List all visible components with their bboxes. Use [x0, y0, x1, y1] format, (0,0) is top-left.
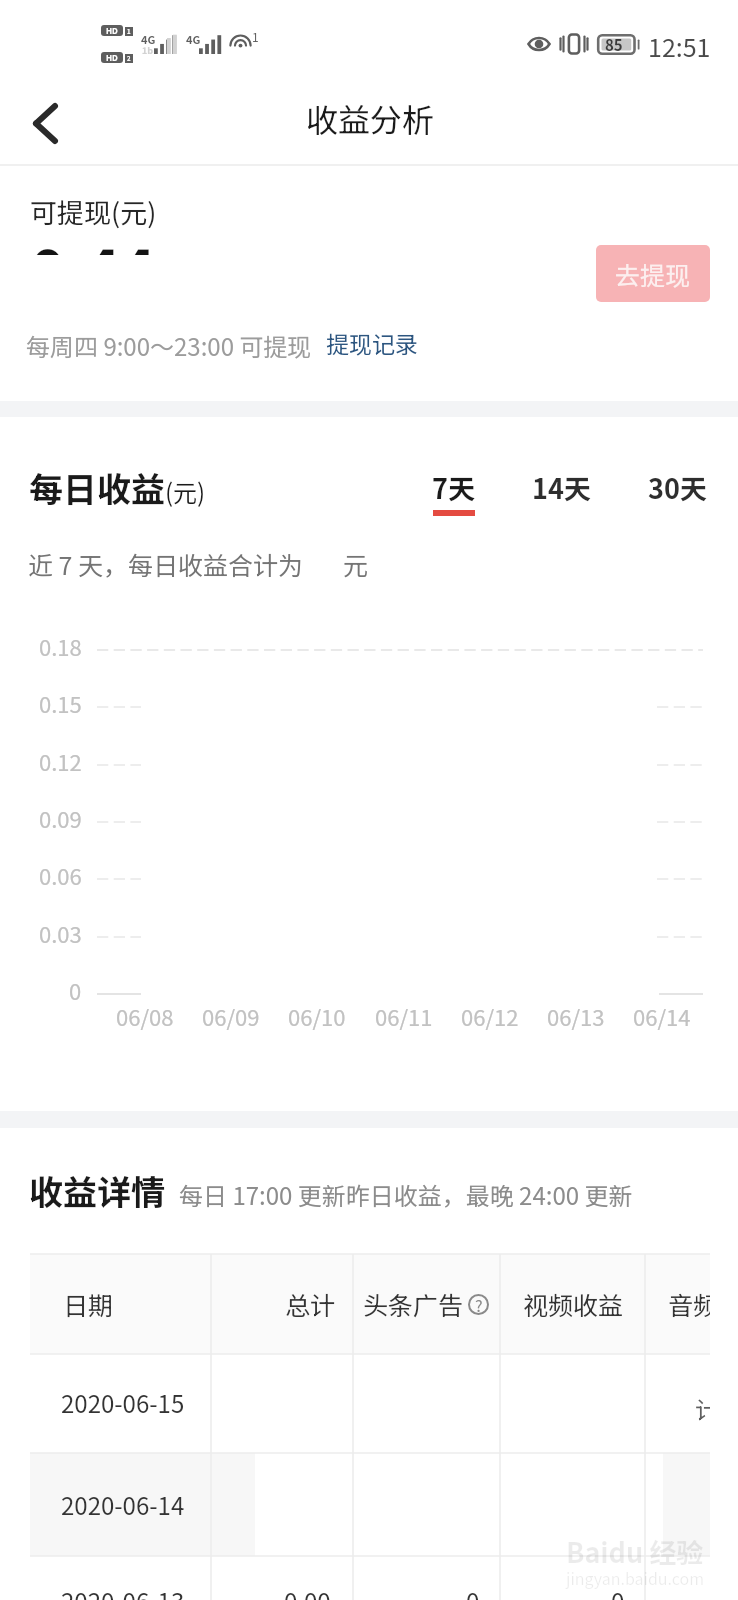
button[interactable]: 14天	[532, 468, 591, 516]
staticText: 近 7 天，每日收益合计为	[28, 546, 304, 582]
button[interactable]: 去提现	[596, 245, 710, 302]
staticText: 元	[343, 546, 369, 582]
staticText: 12:51	[648, 28, 711, 64]
staticText: 每日 17:00 更新昨日收益，最晚 24:00 更新	[179, 1177, 633, 1212]
staticText: 0.18	[39, 630, 82, 662]
staticText: 30天	[648, 468, 707, 507]
staticText: 0.03	[39, 917, 82, 949]
staticText: 4G	[141, 31, 156, 47]
staticText: 0	[69, 974, 82, 1006]
staticText: 0	[466, 1583, 480, 1600]
staticText: 06/10	[288, 1000, 346, 1032]
staticText: 0.06	[39, 859, 82, 891]
staticText: 音频收益	[668, 1286, 710, 1322]
staticText: 1b	[142, 44, 154, 57]
staticText: HD	[106, 25, 118, 36]
staticText: 总计	[285, 1286, 336, 1322]
staticText: 计划	[695, 1391, 710, 1426]
staticText: 2020-06-15	[61, 1385, 185, 1420]
staticText: 视频收益	[523, 1286, 624, 1322]
staticText: 2	[127, 54, 131, 63]
button[interactable]: Back	[5, 80, 85, 166]
staticText: jingyan.baidu.com	[566, 1566, 705, 1589]
staticText: 06/09	[202, 1000, 260, 1032]
staticText: 收益分析	[306, 95, 435, 141]
staticText: 头条广告	[363, 1286, 464, 1322]
staticText: 日期	[63, 1286, 114, 1322]
staticText: 0.15	[39, 687, 82, 719]
staticText: 收益详情	[29, 1166, 165, 1215]
staticText: 去提现	[615, 256, 691, 292]
staticText: 7天	[432, 468, 475, 507]
staticText: 0.12	[39, 745, 82, 777]
staticText: 4G	[186, 31, 201, 47]
staticText: 06/13	[547, 1000, 605, 1032]
staticText: (元)	[165, 474, 206, 509]
staticText: 可提现(元)	[30, 192, 157, 231]
staticText: 0.44	[30, 225, 270, 255]
staticText: ?	[475, 1293, 483, 1314]
button[interactable]: 30天	[648, 468, 707, 516]
staticText: 每周四 9:00～23:00 可提现	[26, 328, 312, 363]
staticText: 06/14	[633, 1000, 691, 1032]
staticText: 每日收益	[29, 463, 165, 512]
staticText: 0	[611, 1583, 625, 1600]
staticText: 85	[605, 34, 623, 55]
staticText: 2020-06-14	[61, 1487, 185, 1522]
staticText: 06/12	[461, 1000, 519, 1032]
staticText: 14天	[532, 468, 591, 507]
staticText: 0.00	[284, 1583, 331, 1600]
staticText: 2020-06-13	[61, 1583, 185, 1600]
staticText: 1	[127, 27, 131, 36]
staticText: 0.09	[39, 802, 82, 834]
button[interactable]: 提现记录	[326, 326, 418, 359]
staticText: 1	[252, 28, 259, 45]
staticText: 提现记录	[326, 326, 418, 359]
staticText: 06/11	[375, 1000, 433, 1032]
staticText: HD	[106, 52, 118, 63]
staticText: 06/08	[116, 1000, 174, 1032]
staticText: Baidu 经验	[566, 1532, 704, 1571]
button[interactable]: 7天	[432, 468, 475, 516]
